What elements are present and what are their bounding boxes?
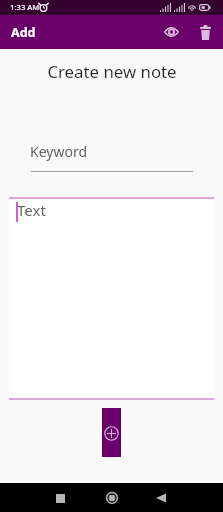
staticText: Text [17, 200, 46, 220]
staticText: 1:33 AM [10, 2, 40, 12]
button[interactable]: Add [102, 408, 121, 457]
button[interactable]: Delete [189, 16, 221, 48]
button[interactable]: Recents [44, 483, 77, 512]
button[interactable]: Preview [155, 16, 187, 48]
button[interactable]: Text [9, 197, 214, 400]
staticText: Create new note [47, 60, 177, 83]
button[interactable]: Home [95, 483, 128, 512]
staticText: Keyword [30, 142, 88, 161]
staticText: Add [11, 24, 36, 41]
button[interactable]: Back [145, 483, 178, 512]
